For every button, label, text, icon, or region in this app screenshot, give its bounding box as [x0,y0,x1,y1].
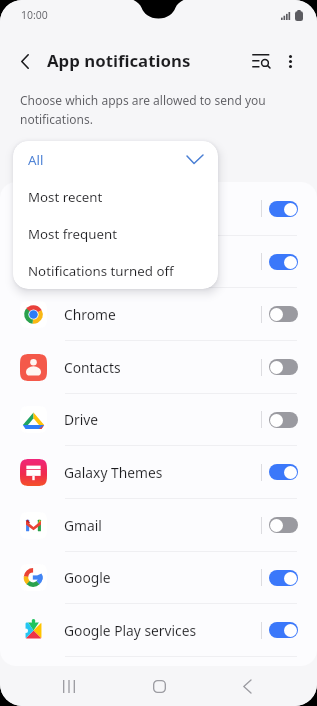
staticText: App notifications [47,49,191,72]
staticText: Drive [64,410,99,429]
button[interactable]: Enabled [269,622,298,638]
button[interactable]: Enabled [269,201,298,217]
button[interactable]: Calendar [0,182,317,235]
button[interactable]: Most recent [13,178,218,215]
button[interactable]: Disabled [269,306,298,322]
staticText: Chrome [64,305,116,324]
button[interactable]: Recent apps [49,666,89,706]
staticText: Choose which apps are allowed to send yo… [20,92,272,128]
staticText: Most recent [28,188,103,206]
staticText: Contacts [64,358,121,377]
staticText: Most frequent [28,225,117,243]
button[interactable]: Navigate up [8,44,42,78]
button[interactable]: Enabled [269,464,298,480]
button[interactable]: Galaxy Themes [0,446,317,498]
button[interactable]: Camera [0,236,317,287]
button[interactable]: Gmail [0,499,317,551]
button[interactable]: Enabled [269,570,298,586]
button[interactable]: Disabled [269,517,298,533]
staticText: Galaxy Themes [64,463,163,482]
button[interactable]: Chrome [0,288,317,340]
button[interactable]: Drive [0,394,317,445]
button[interactable]: More options [273,44,307,78]
staticText: 10:00 [21,8,48,22]
staticText: Camera [64,252,115,271]
button[interactable]: All [13,141,218,178]
staticText: Google Play services [64,621,197,640]
staticText: Gmail [64,516,102,535]
button[interactable]: Google [0,552,317,603]
button[interactable]: Most frequent [13,215,218,252]
button[interactable]: Enabled [269,254,298,270]
staticText: Google [64,568,111,587]
button[interactable]: Back [227,666,267,706]
staticText: All [28,151,44,169]
button[interactable]: Disabled [269,412,298,428]
staticText: Notifications turned off [28,262,174,280]
button[interactable]: Notifications turned off [13,252,218,289]
button[interactable]: Search [244,44,278,78]
staticText: Calendar [64,199,123,218]
button[interactable]: Home [139,666,179,706]
button[interactable]: Contacts [0,341,317,393]
button[interactable]: Google Play services [0,604,317,656]
button[interactable]: Disabled [269,359,298,375]
